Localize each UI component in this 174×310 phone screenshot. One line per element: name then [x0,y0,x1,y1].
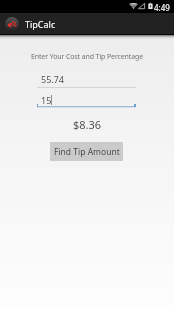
staticText: 15 [41,94,52,106]
other: Mobile signal [138,3,145,9]
staticText: 55.74 [41,73,65,85]
button[interactable]: 55.74 [37,71,136,88]
staticText: $8.36 [0,117,174,132]
other: Battery charging [148,2,153,10]
staticText: TipCalc [25,18,56,30]
staticText: 4:49 [154,2,170,13]
other: Wi-Fi [129,3,138,9]
button[interactable]: TipCalc app icon [5,17,19,31]
staticText: Find Tip Amount [54,146,120,158]
staticText: Enter Your Cost and Tip Percentage [0,52,174,62]
button[interactable]: 15 [37,92,136,108]
button[interactable]: Find Tip Amount [50,142,123,161]
